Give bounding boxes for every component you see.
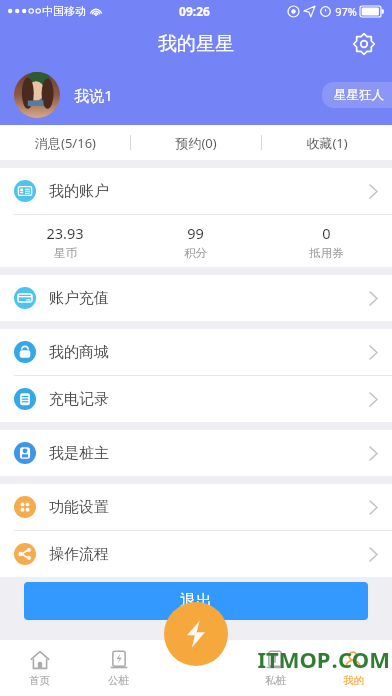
staticText: 星星狂人: [334, 87, 384, 103]
staticText: 操作流程: [49, 545, 109, 564]
button[interactable]: 公桩: [79, 640, 158, 696]
staticText: 我的账户: [49, 182, 109, 201]
staticText: 我的星星: [158, 32, 234, 56]
button[interactable]: 星星狂人: [322, 82, 392, 108]
button[interactable]: 预约(0): [131, 125, 261, 160]
staticText: 中国移动: [42, 4, 86, 18]
staticText: 消息(5/16): [35, 134, 96, 152]
staticText: 收藏(1): [306, 134, 348, 152]
staticText: 充电记录: [49, 390, 109, 409]
button[interactable]: 操作流程: [0, 531, 392, 577]
staticText: 抵用券: [309, 246, 344, 260]
staticText: 我说1: [74, 85, 113, 105]
staticText: 23.93: [46, 223, 84, 243]
staticText: 公桩: [108, 674, 129, 687]
staticText: 账户充值: [49, 289, 109, 308]
staticText: 预约(0): [175, 134, 217, 152]
staticText: 首页: [29, 674, 50, 687]
staticText: 99: [187, 223, 204, 243]
button[interactable]: Charge: [164, 602, 228, 666]
staticText: .: [331, 644, 338, 674]
button[interactable]: 私桩: [236, 640, 314, 696]
button[interactable]: 功能设置: [0, 484, 392, 530]
button[interactable]: 我的商城: [0, 329, 392, 375]
staticText: 我是桩主: [49, 444, 109, 463]
button[interactable]: Avatar: [14, 72, 60, 118]
staticText: 09:26: [179, 3, 210, 19]
staticText: 我的商城: [49, 343, 109, 362]
staticText: 私桩: [265, 674, 286, 687]
staticText: 星币: [54, 246, 77, 260]
button[interactable]: 99: [130, 223, 261, 260]
staticText: COM: [338, 644, 390, 674]
button[interactable]: 账户充值: [0, 275, 392, 321]
button[interactable]: 0: [261, 223, 392, 260]
staticText: 退出: [180, 591, 212, 611]
staticText: 97%: [335, 4, 357, 19]
button[interactable]: Settings: [348, 28, 380, 60]
button[interactable]: 退出: [24, 582, 368, 620]
button[interactable]: 消息(5/16): [0, 125, 130, 160]
staticText: ITMOP: [257, 644, 331, 674]
staticText: 积分: [184, 246, 207, 260]
button[interactable]: 首页: [0, 640, 79, 696]
button[interactable]: 我的: [314, 640, 392, 696]
button[interactable]: 收藏(1): [262, 125, 392, 160]
staticText: 我的: [343, 674, 364, 687]
staticText: 功能设置: [49, 498, 109, 517]
button[interactable]: 我是桩主: [0, 430, 392, 476]
staticText: 0: [322, 223, 331, 243]
button[interactable]: 23.93: [0, 223, 130, 260]
button[interactable]: 我的账户: [0, 168, 392, 214]
button[interactable]: 充电记录: [0, 376, 392, 422]
